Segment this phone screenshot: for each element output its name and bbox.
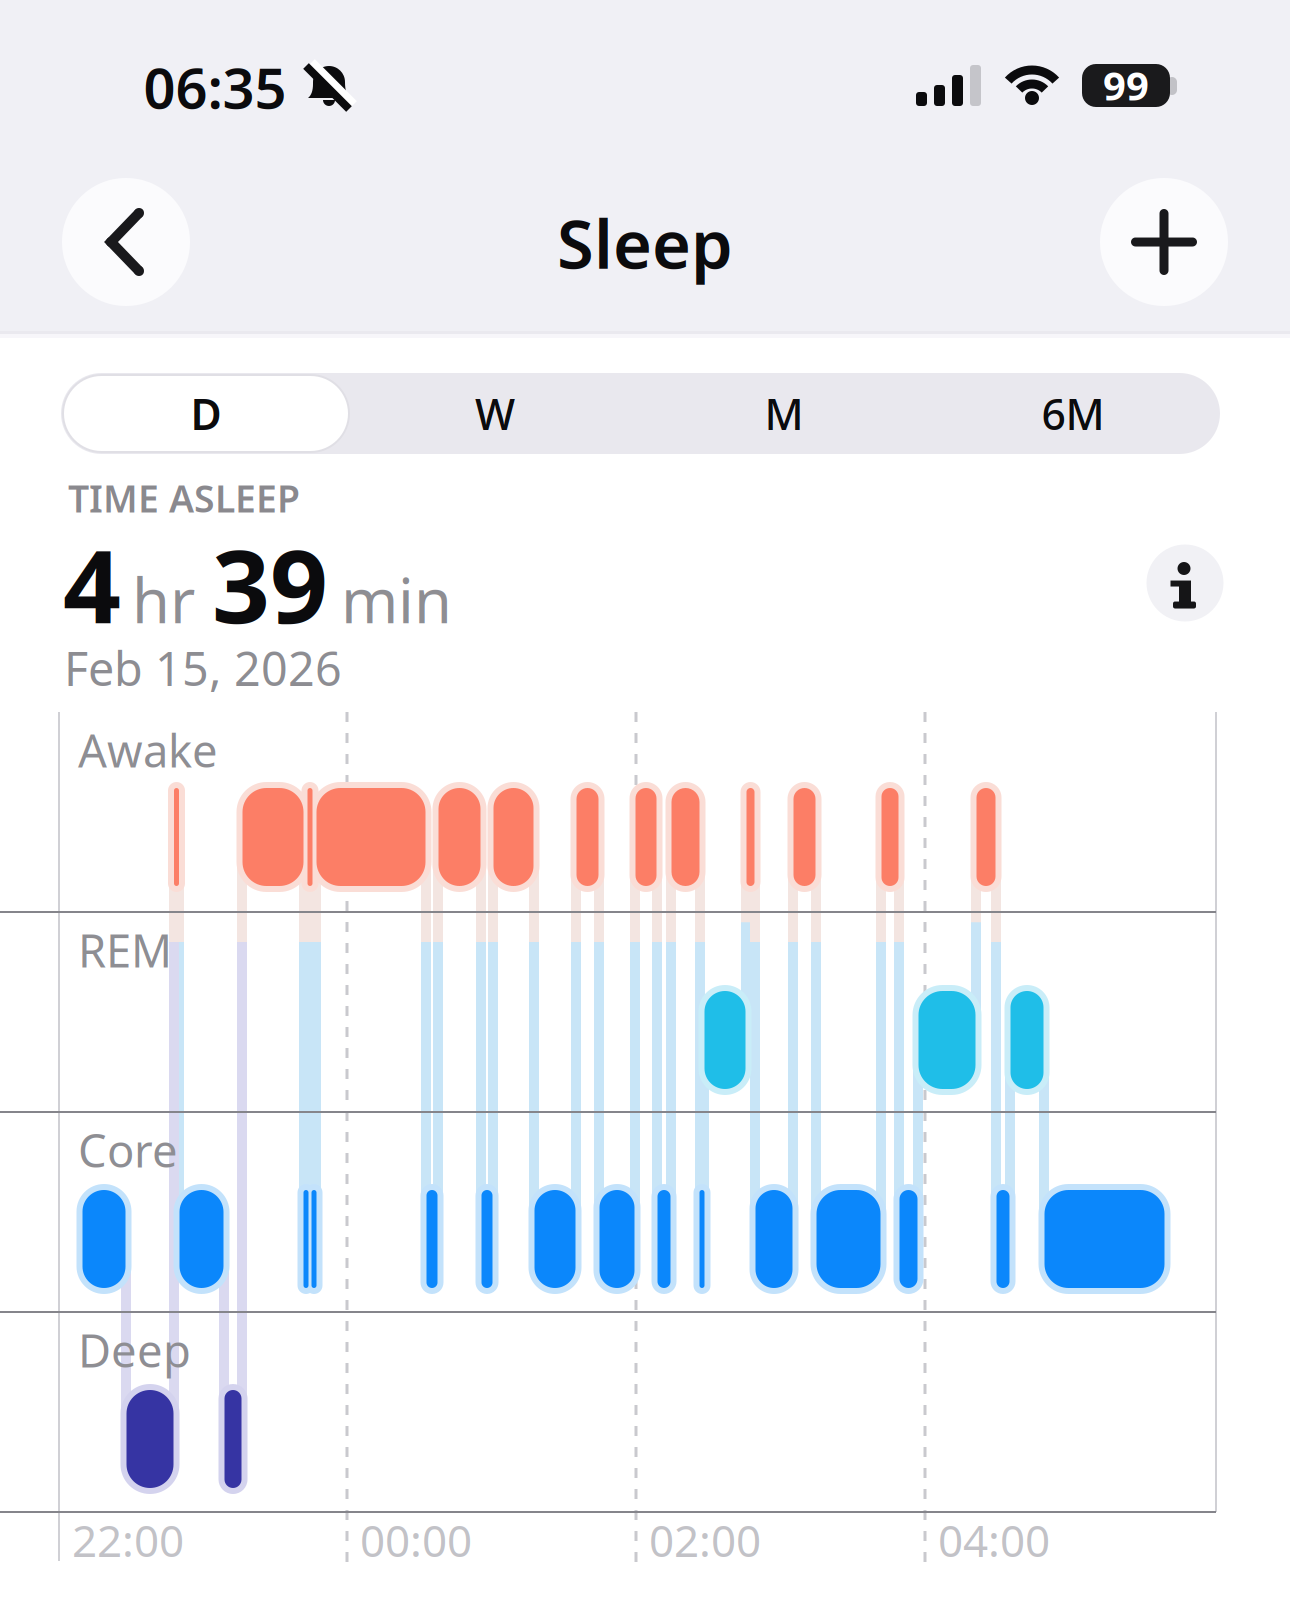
button[interactable]: 6M — [933, 373, 1213, 454]
staticText: D — [190, 385, 221, 442]
button[interactable] — [1100, 178, 1228, 306]
button[interactable]: W — [355, 373, 635, 454]
staticText: M — [764, 385, 803, 442]
staticText: Deep — [78, 1320, 191, 1380]
staticText: REM — [78, 920, 172, 980]
button[interactable] — [62, 178, 190, 306]
button[interactable]: D — [62, 374, 350, 453]
staticText: Sleep — [557, 199, 733, 287]
staticText: W — [475, 385, 515, 442]
staticText: 39 — [212, 517, 328, 651]
staticText: 02:00 — [649, 1511, 761, 1569]
staticText: 22:00 — [72, 1511, 184, 1569]
staticText: Awake — [78, 720, 218, 780]
staticText: 6M — [1041, 385, 1104, 442]
staticText: TIME ASLEEP — [68, 473, 300, 523]
staticText: 99 — [1103, 58, 1149, 111]
staticText: min — [341, 559, 452, 640]
staticText: 00:00 — [360, 1511, 472, 1569]
button[interactable]: M — [644, 373, 924, 454]
staticText: hr — [132, 559, 195, 640]
staticText: 4 — [63, 517, 121, 651]
button[interactable] — [1146, 544, 1223, 621]
staticText: 04:00 — [938, 1511, 1050, 1569]
staticText: Feb 15, 2026 — [64, 637, 342, 699]
staticText: 06:35 — [143, 50, 286, 124]
staticText: Core — [78, 1120, 178, 1180]
